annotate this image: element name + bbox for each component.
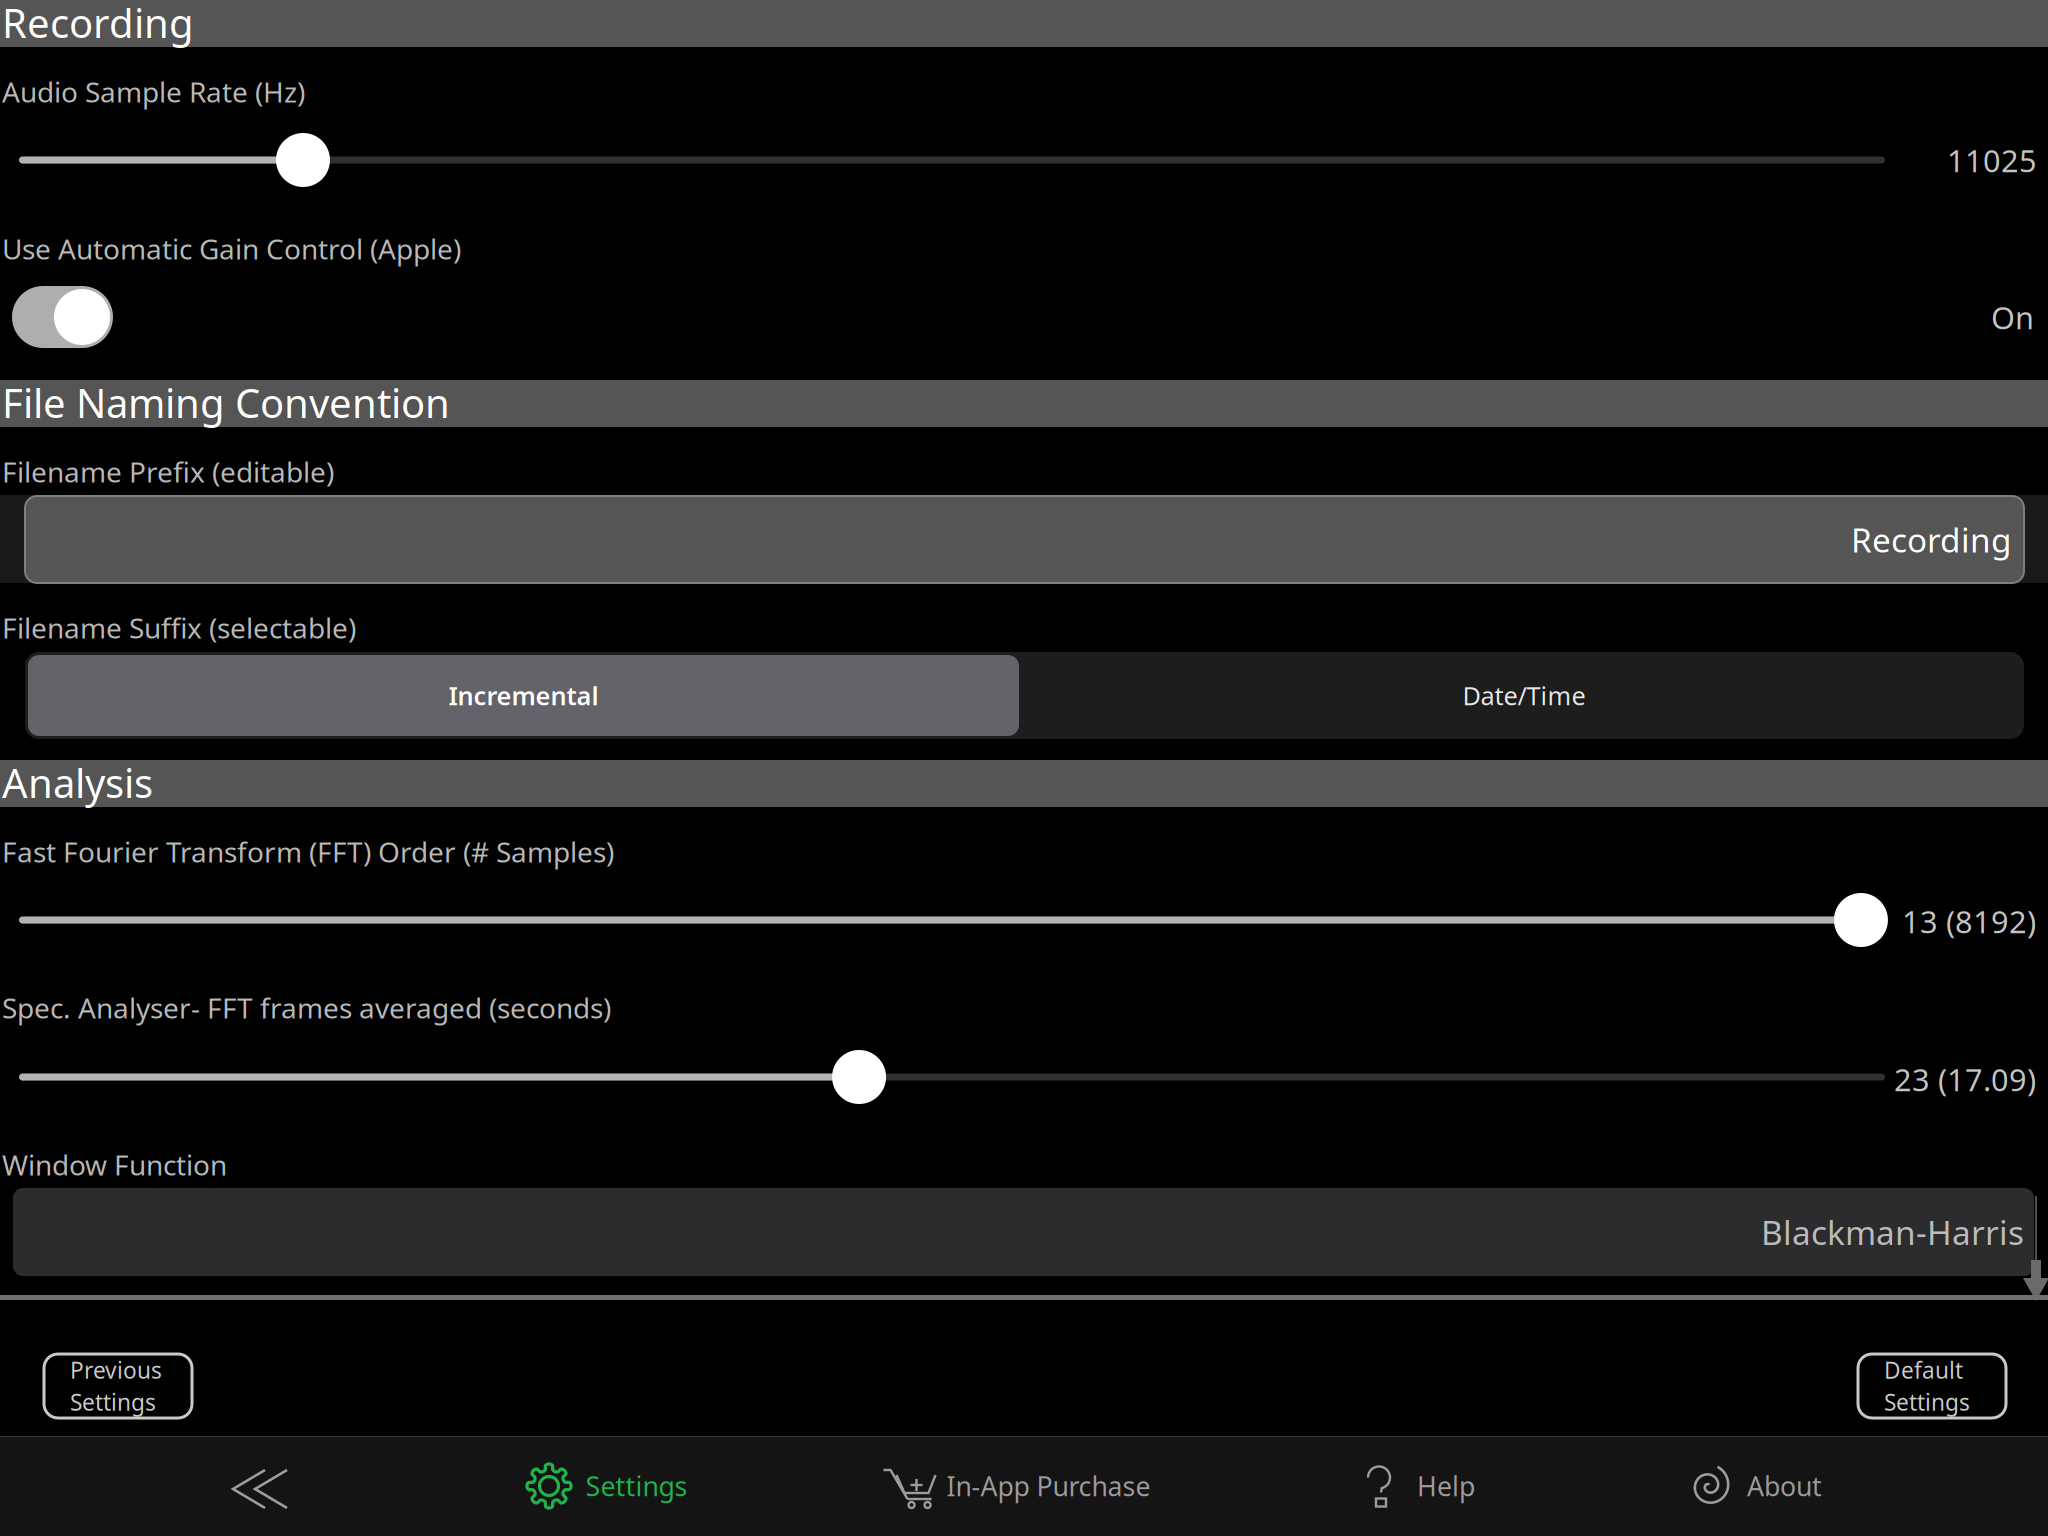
staticText: Recording: [2, 0, 194, 49]
staticText: 13 (8192): [1902, 901, 2036, 942]
staticText: About: [1747, 1468, 1822, 1504]
staticText: 23 (17.09): [1894, 1059, 2036, 1100]
button[interactable]: Date/Time: [1018, 655, 2030, 736]
staticText: Fast Fourier Transform (FFT) Order (# Sa…: [2, 833, 614, 870]
button[interactable]: Back: [200, 1439, 320, 1536]
staticText: Incremental: [448, 679, 598, 712]
staticText: Recording: [1851, 517, 2012, 562]
button[interactable]: Default: [1858, 1354, 2006, 1418]
staticText: Spec. Analyser- FFT frames averaged (sec…: [2, 989, 611, 1026]
staticText: Filename Prefix (editable): [2, 453, 334, 490]
staticText: Settings: [1884, 1387, 1970, 1417]
staticText: On: [1991, 297, 2034, 338]
button[interactable]: Previous: [44, 1354, 192, 1418]
button[interactable]: Use Automatic Gain Control: [12, 286, 113, 348]
button[interactable]: Recording: [25, 496, 2024, 583]
button[interactable]: Incremental: [28, 655, 1019, 736]
button[interactable]: Blackman-Harris: [13, 1188, 2034, 1276]
staticText: Blackman-Harris: [1761, 1210, 2024, 1254]
staticText: Settings: [70, 1387, 156, 1417]
button[interactable]: In-App Purchase: [882, 1436, 1152, 1536]
staticText: Default: [1884, 1355, 1963, 1385]
staticText: Date/Time: [1462, 679, 1585, 712]
staticText: Settings: [585, 1468, 687, 1504]
staticText: 11025: [1947, 140, 2037, 181]
staticText: Analysis: [2, 756, 153, 809]
staticText: File Naming Convention: [2, 376, 450, 429]
button[interactable]: About: [1682, 1436, 1827, 1536]
staticText: Window Function: [2, 1146, 227, 1183]
staticText: Help: [1417, 1468, 1475, 1504]
staticText: Filename Suffix (selectable): [2, 609, 356, 646]
button[interactable]: Settings: [514, 1436, 699, 1536]
staticText: Audio Sample Rate (Hz): [2, 73, 305, 110]
staticText: In-App Purchase: [946, 1468, 1150, 1504]
staticText: Use Automatic Gain Control (Apple): [2, 230, 461, 267]
staticText: Previous: [70, 1355, 162, 1385]
button[interactable]: Help: [1356, 1436, 1486, 1536]
